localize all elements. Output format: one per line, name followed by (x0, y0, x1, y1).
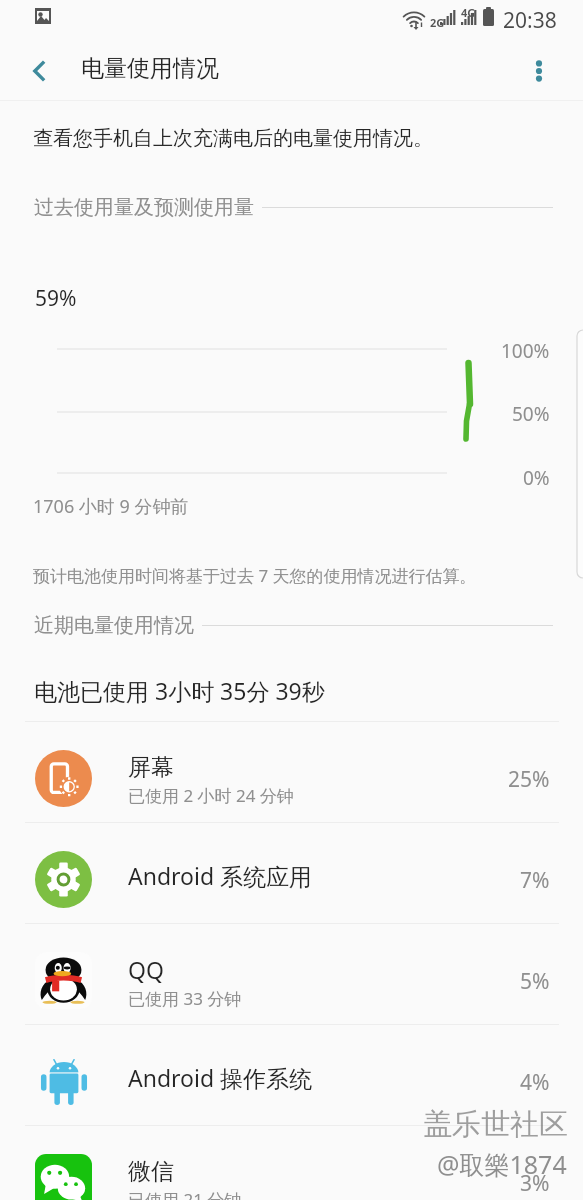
staticText: 已使用 2 小时 24 分钟 (128, 784, 294, 807)
staticText: 4% (520, 1068, 550, 1097)
staticText: 2G (430, 15, 445, 30)
button[interactable]: 微信 (0, 1126, 583, 1200)
staticText: 电量使用情况 (81, 54, 219, 83)
button[interactable]: 屏幕 (0, 722, 583, 822)
button[interactable]: Back (16, 47, 64, 95)
staticText: Android 操作系统 (128, 1062, 313, 1093)
staticText: 过去使用量及预测使用量 (34, 195, 254, 220)
staticText: 已使用 21 分钟 (128, 1188, 242, 1200)
staticText: 0% (523, 465, 550, 491)
button[interactable]: Android 操作系统 (0, 1025, 583, 1125)
staticText: QQ (128, 954, 164, 985)
button[interactable]: More options (515, 47, 563, 95)
staticText: 近期电量使用情况 (34, 613, 194, 638)
staticText: 5% (520, 967, 550, 996)
staticText: @取樂1874 (437, 1147, 567, 1181)
staticText: 3% (520, 1169, 550, 1198)
staticText: 59% (35, 284, 77, 313)
button[interactable]: Android 系统应用 (0, 823, 583, 923)
button[interactable]: QQ (0, 924, 583, 1024)
staticText: 微信 (128, 1157, 174, 1186)
staticText: 盖乐世社区 (423, 1106, 568, 1143)
staticText: 已使用 33 分钟 (128, 987, 242, 1010)
staticText: 4G (461, 5, 476, 20)
staticText: 预计电池使用时间将基于过去 7 天您的使用情况进行估算。 (33, 564, 477, 587)
staticText: 1706 小时 9 分钟前 (33, 494, 189, 519)
staticText: 屏幕 (128, 753, 174, 782)
staticText: 7% (520, 866, 550, 895)
staticText: Android 系统应用 (128, 860, 313, 891)
staticText: 20:38 (503, 6, 557, 35)
staticText: 25% (508, 765, 550, 794)
staticText: 查看您手机自上次充满电后的电量使用情况。 (33, 126, 433, 151)
staticText: 50% (512, 401, 550, 427)
staticText: 电池已使用 3小时 35分 39秒 (34, 675, 325, 706)
staticText: 100% (501, 338, 550, 364)
